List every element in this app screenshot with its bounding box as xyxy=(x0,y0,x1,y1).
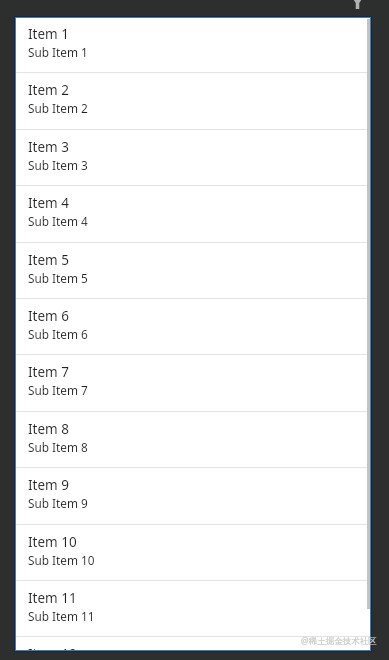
staticText: Sub Item 4 xyxy=(28,213,88,229)
staticText: Item 4 xyxy=(28,194,69,212)
staticText: @稀土掘金技术社区 xyxy=(301,635,377,647)
staticText: Sub Item 9 xyxy=(28,495,88,511)
staticText: Sub Item 1 xyxy=(28,44,88,60)
staticText: Item 5 xyxy=(28,251,69,269)
button[interactable]: Item 7 xyxy=(16,354,370,410)
button[interactable]: Item 4 xyxy=(16,185,370,241)
staticText: Item 12 xyxy=(28,645,77,650)
staticText: Item 3 xyxy=(28,138,69,156)
button[interactable]: Item 5 xyxy=(16,242,370,298)
button[interactable]: Item 11 xyxy=(16,580,370,636)
staticText: Item 1 xyxy=(28,25,69,43)
staticText: Sub Item 10 xyxy=(28,552,95,568)
staticText: Item 2 xyxy=(28,81,69,99)
staticText: Sub Item 11 xyxy=(28,608,95,624)
staticText: Item 9 xyxy=(28,476,69,494)
staticText: Item 6 xyxy=(28,307,69,325)
button[interactable]: Item 3 xyxy=(16,129,370,185)
staticText: Item 7 xyxy=(28,363,69,381)
staticText: Sub Item 8 xyxy=(28,439,88,455)
button[interactable]: Filter xyxy=(345,0,369,14)
staticText: Sub Item 5 xyxy=(28,270,88,286)
button[interactable]: Item 12 xyxy=(16,636,370,650)
staticText: Item 8 xyxy=(28,420,69,438)
staticText: Sub Item 6 xyxy=(28,326,88,342)
button[interactable]: Item 6 xyxy=(16,298,370,354)
staticText: Sub Item 7 xyxy=(28,382,88,398)
button[interactable]: Item 9 xyxy=(16,467,370,523)
button[interactable]: Item 10 xyxy=(16,524,370,580)
staticText: Sub Item 3 xyxy=(28,157,88,173)
button[interactable]: Item 8 xyxy=(16,411,370,467)
button[interactable]: Item 1 xyxy=(16,18,370,72)
button[interactable]: Item 2 xyxy=(16,72,370,128)
staticText: Sub Item 2 xyxy=(28,100,88,116)
staticText: Item 11 xyxy=(28,589,77,607)
staticText: Item 10 xyxy=(28,533,77,551)
